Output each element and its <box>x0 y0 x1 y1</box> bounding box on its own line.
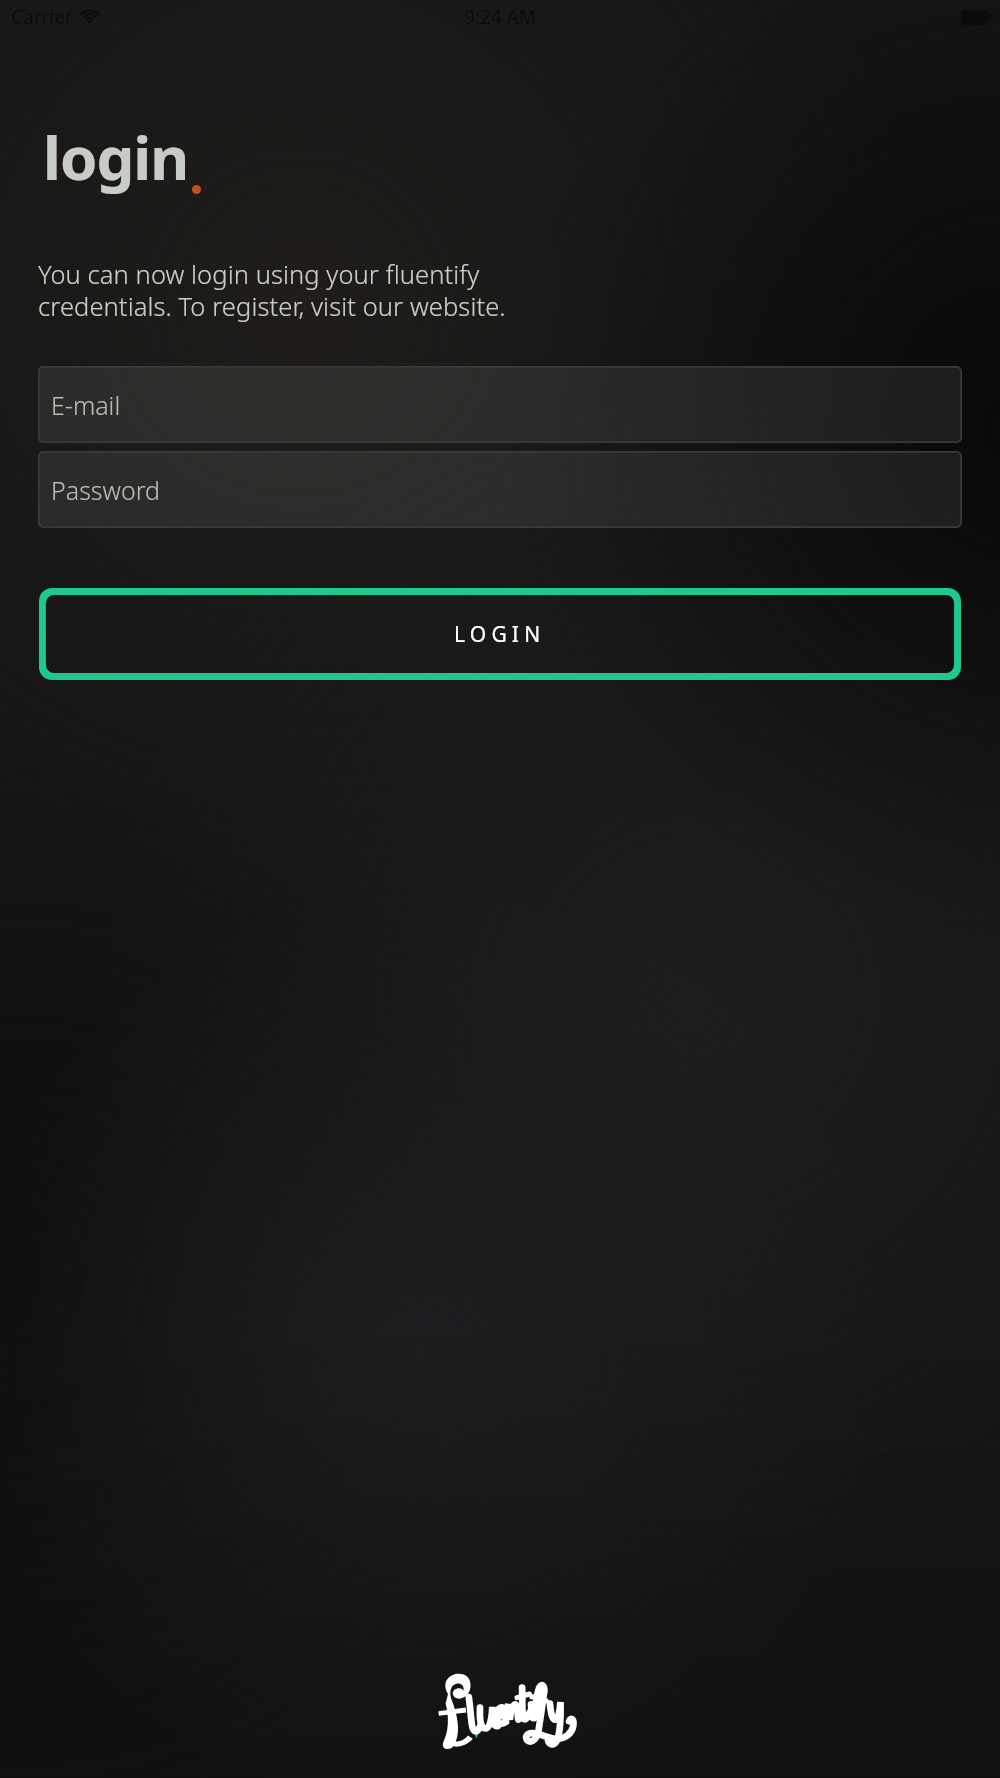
staticText: Password <box>51 473 160 507</box>
button[interactable]: LOGIN <box>39 588 961 680</box>
button[interactable]: E-mail <box>38 366 962 443</box>
staticText: E-mail <box>51 388 121 422</box>
staticText: Carrier <box>11 4 73 30</box>
staticText: You can now login using your fluentify c… <box>38 257 506 324</box>
staticText: login <box>43 116 189 198</box>
other: fluentify <box>420 1670 580 1750</box>
staticText: 9:24 AM <box>464 4 537 30</box>
staticText: LOGIN <box>454 620 546 649</box>
button[interactable]: Password <box>38 451 962 528</box>
